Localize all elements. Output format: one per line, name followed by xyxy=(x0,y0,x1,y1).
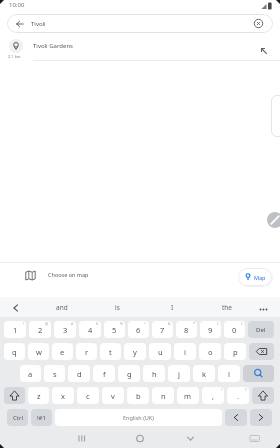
button[interactable]: i xyxy=(174,343,196,360)
staticText: 9 xyxy=(208,325,213,335)
button[interactable]: g xyxy=(118,365,140,382)
button[interactable]: m xyxy=(177,387,199,404)
staticText: m xyxy=(184,391,192,401)
staticText: s xyxy=(53,369,57,379)
button[interactable]: w xyxy=(28,343,49,360)
staticText: 6 xyxy=(136,325,141,335)
staticText: 8 xyxy=(184,325,189,335)
button[interactable]: b xyxy=(127,387,149,404)
button[interactable]: e xyxy=(52,343,73,360)
staticText: !#1 xyxy=(37,414,46,422)
button[interactable]: 7 xyxy=(152,321,173,338)
button[interactable]: !#1 xyxy=(31,409,52,426)
button[interactable] xyxy=(225,409,247,426)
button[interactable]: v xyxy=(102,387,124,404)
button[interactable]: English (UK) xyxy=(55,409,222,426)
button[interactable]: . xyxy=(227,387,249,404)
button[interactable] xyxy=(249,343,274,360)
button[interactable]: n xyxy=(152,387,174,404)
button[interactable] xyxy=(252,387,274,404)
staticText: f xyxy=(103,369,106,379)
button[interactable]: u xyxy=(149,343,171,360)
button[interactable]: 2 xyxy=(29,321,51,338)
button[interactable]: I xyxy=(147,297,197,318)
button[interactable] xyxy=(250,409,272,426)
staticText: w xyxy=(36,347,42,357)
staticText: u xyxy=(158,347,163,357)
staticText: c xyxy=(86,391,90,401)
staticText: I xyxy=(171,303,174,312)
button[interactable]: Map xyxy=(238,268,272,286)
button[interactable] xyxy=(4,387,25,404)
button[interactable]: f xyxy=(93,365,115,382)
button[interactable]: 6 xyxy=(128,321,149,338)
staticText: Tivoli xyxy=(31,20,46,28)
staticText: 7 xyxy=(160,325,165,335)
staticText: o xyxy=(208,347,213,357)
button[interactable]: Choose on map xyxy=(0,262,280,296)
button[interactable] xyxy=(267,212,280,228)
button[interactable]: Tivoli xyxy=(7,14,273,33)
staticText: n xyxy=(161,391,166,401)
button[interactable]: 4 xyxy=(79,321,101,338)
button[interactable]: c xyxy=(77,387,99,404)
button[interactable] xyxy=(126,430,154,448)
button[interactable]: Del xyxy=(248,321,274,338)
button[interactable]: p xyxy=(224,343,246,360)
staticText: j xyxy=(178,369,180,379)
staticText: q xyxy=(12,347,17,357)
staticText: i xyxy=(184,347,186,357)
staticText: @ xyxy=(45,321,49,326)
button[interactable]: j xyxy=(168,365,190,382)
button[interactable]: y xyxy=(124,343,146,360)
staticText: ( xyxy=(217,321,219,326)
button[interactable]: a xyxy=(20,365,41,382)
button[interactable]: h xyxy=(143,365,165,382)
staticText: the xyxy=(222,303,233,312)
staticText: * xyxy=(193,321,195,326)
button[interactable]: r xyxy=(76,343,97,360)
staticText: Choose on map xyxy=(48,271,89,278)
staticText: l xyxy=(228,369,230,379)
button[interactable]: and xyxy=(37,297,87,318)
staticText: % xyxy=(120,321,123,326)
staticText: ? xyxy=(245,387,247,392)
button[interactable]: 3 xyxy=(54,321,76,338)
button[interactable]: t xyxy=(100,343,121,360)
staticText: ! xyxy=(23,321,24,326)
button[interactable]: is xyxy=(92,297,142,318)
button[interactable]: o xyxy=(199,343,221,360)
staticText: 2.1 km xyxy=(8,54,21,59)
button[interactable]: q xyxy=(4,343,25,360)
button[interactable] xyxy=(70,430,98,448)
button[interactable]: l xyxy=(218,365,240,382)
button[interactable]: 2.1 km xyxy=(0,36,280,61)
button[interactable]: 5 xyxy=(104,321,125,338)
button[interactable]: x xyxy=(52,387,74,404)
button[interactable] xyxy=(243,365,274,382)
button[interactable]: k xyxy=(193,365,215,382)
button[interactable]: , xyxy=(202,387,224,404)
staticText: # xyxy=(71,321,74,326)
button[interactable]: 1 xyxy=(4,321,26,338)
staticText: $ xyxy=(96,321,99,326)
button[interactable]: Ctrl xyxy=(7,409,28,426)
staticText: 5 xyxy=(112,325,117,335)
button[interactable] xyxy=(177,430,205,448)
staticText: z xyxy=(37,391,41,401)
staticText: r xyxy=(85,347,89,357)
staticText: e xyxy=(60,347,65,357)
button[interactable]: 0 xyxy=(224,321,245,338)
staticText: Map xyxy=(254,274,266,281)
button[interactable]: d xyxy=(68,365,90,382)
button[interactable]: s xyxy=(44,365,65,382)
staticText: & xyxy=(168,321,171,326)
staticText: x xyxy=(61,391,65,401)
button[interactable]: the xyxy=(202,297,252,318)
staticText: a xyxy=(28,369,33,379)
button[interactable]: 9 xyxy=(200,321,221,338)
staticText: ) xyxy=(241,321,243,326)
staticText: b xyxy=(136,391,141,401)
button[interactable]: 8 xyxy=(176,321,197,338)
button[interactable]: z xyxy=(28,387,49,404)
